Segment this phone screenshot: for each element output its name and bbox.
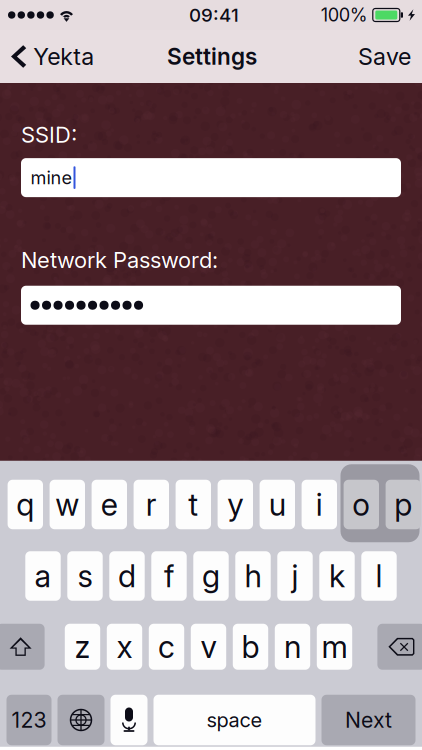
button[interactable]: Save: [347, 30, 422, 83]
button[interactable]: space: [153, 695, 315, 745]
button[interactable]: Delete: [377, 624, 422, 670]
staticText: g: [202, 557, 220, 594]
button[interactable]: j: [277, 551, 313, 601]
staticText: u: [269, 486, 286, 523]
button[interactable]: y: [218, 480, 253, 529]
staticText: Network Password:: [21, 247, 218, 273]
staticText: d: [118, 557, 136, 594]
staticText: z: [74, 628, 90, 665]
button[interactable]: n: [275, 624, 310, 670]
button[interactable]: b: [233, 624, 268, 670]
staticText: q: [16, 486, 34, 523]
button[interactable]: c: [149, 624, 184, 670]
button[interactable]: z: [65, 624, 100, 670]
button[interactable]: m: [317, 624, 352, 670]
staticText: space: [206, 708, 262, 732]
staticText: 09:41: [189, 4, 239, 26]
staticText: x: [116, 628, 132, 665]
button[interactable]: p: [386, 480, 421, 529]
staticText: c: [158, 628, 175, 665]
button[interactable]: d: [109, 551, 145, 601]
staticText: 123: [11, 707, 46, 733]
staticText: s: [77, 557, 92, 594]
button[interactable]: q: [8, 480, 43, 529]
staticText: y: [227, 486, 243, 523]
button[interactable]: r: [134, 480, 169, 529]
button[interactable]: v: [191, 624, 226, 670]
staticText: t: [188, 486, 198, 523]
staticText: 100%: [321, 4, 368, 26]
staticText: Save: [358, 42, 411, 71]
button[interactable]: u: [260, 480, 295, 529]
staticText: r: [146, 486, 157, 523]
button[interactable]: 123: [6, 695, 51, 745]
staticText: a: [34, 557, 51, 594]
staticText: l: [375, 557, 382, 594]
button[interactable]: Dictate: [110, 695, 147, 745]
staticText: f: [164, 557, 174, 594]
staticText: p: [394, 486, 412, 523]
button[interactable]: x: [107, 624, 142, 670]
button[interactable]: g: [193, 551, 229, 601]
staticText: v: [200, 628, 216, 665]
button[interactable]: a: [25, 551, 61, 601]
button[interactable]: Next keyboard: [57, 695, 104, 745]
button[interactable]: t: [176, 480, 211, 529]
button[interactable]: i: [302, 480, 337, 529]
staticText: m: [321, 628, 347, 665]
button[interactable]: l: [361, 551, 397, 601]
button[interactable]: Next: [321, 695, 415, 745]
button[interactable]: f: [151, 551, 187, 601]
staticText: k: [329, 557, 345, 594]
button[interactable]: Shift: [0, 624, 45, 670]
button[interactable]: k: [319, 551, 355, 601]
button[interactable]: s: [67, 551, 103, 601]
staticText: Yekta: [33, 42, 94, 71]
staticText: o: [352, 486, 370, 523]
button[interactable]: w: [50, 480, 85, 529]
staticText: j: [291, 557, 298, 594]
button[interactable]: Yekta: [0, 30, 102, 83]
staticText: Next: [345, 707, 392, 733]
staticText: SSID:: [21, 121, 77, 148]
staticText: e: [101, 486, 118, 523]
button[interactable]: h: [235, 551, 271, 601]
staticText: b: [241, 628, 259, 665]
staticText: w: [55, 486, 79, 523]
staticText: i: [316, 486, 323, 523]
staticText: Settings: [167, 43, 257, 70]
button[interactable]: e: [92, 480, 127, 529]
staticText: h: [244, 557, 261, 594]
staticText: mine: [30, 167, 72, 188]
button[interactable]: o: [344, 480, 379, 529]
staticText: n: [284, 628, 301, 665]
